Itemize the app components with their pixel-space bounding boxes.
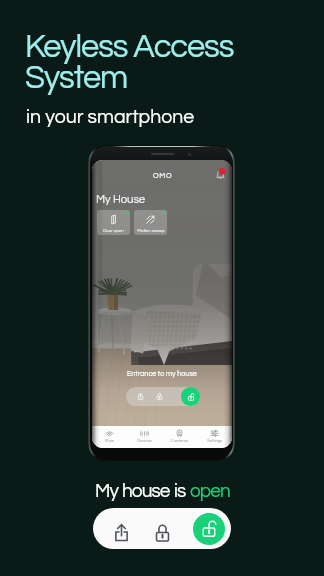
staticText: My House bbox=[96, 194, 146, 206]
button[interactable]: Cameras bbox=[162, 426, 197, 443]
button[interactable]: Lock bbox=[146, 517, 178, 549]
button[interactable]: Unlock bbox=[193, 513, 225, 545]
staticText: open bbox=[190, 481, 230, 501]
button[interactable]: Share bbox=[134, 390, 147, 403]
staticText: in your smartphone bbox=[26, 107, 195, 127]
staticText: house bbox=[122, 481, 170, 501]
button[interactable]: Lock bbox=[153, 390, 166, 403]
staticText: Cameras bbox=[171, 439, 189, 443]
staticText: Entrance to my house bbox=[127, 370, 197, 377]
staticText: OMO bbox=[153, 172, 173, 180]
button[interactable]: Share bbox=[105, 517, 137, 549]
staticText: Door open bbox=[103, 228, 124, 233]
button[interactable]: Settings bbox=[197, 426, 232, 443]
staticText: Motion sweep bbox=[137, 228, 165, 233]
button[interactable]: Motion sweep bbox=[134, 210, 167, 235]
staticText: My bbox=[95, 481, 118, 501]
button[interactable]: Door open bbox=[97, 210, 130, 235]
button[interactable]: Unlock bbox=[181, 387, 200, 406]
button[interactable]: Notifications bbox=[216, 168, 228, 180]
staticText: Main bbox=[105, 439, 115, 443]
staticText: is bbox=[174, 481, 186, 501]
staticText: Devices bbox=[137, 439, 152, 443]
button[interactable]: Main bbox=[92, 426, 127, 443]
button[interactable]: Devices bbox=[127, 426, 162, 443]
staticText: Settings bbox=[207, 439, 223, 443]
staticText: Keyless Access System bbox=[25, 30, 234, 95]
